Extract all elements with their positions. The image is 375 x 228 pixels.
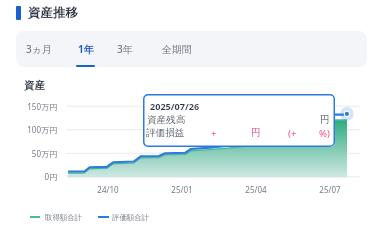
staticText: 25/04 [236,184,276,195]
button[interactable]: 3ヵ月 [18,31,59,67]
button[interactable]: 3年 [108,31,141,67]
staticText: (+ [288,127,297,140]
staticText: 資産 [24,79,45,92]
staticText: 150万円 [8,101,57,112]
button[interactable]: 1年 [69,31,102,67]
staticText: 2025/07/26 [150,100,200,112]
button[interactable]: 取得額合計 [28,206,86,224]
staticText: 資産推移 [28,5,78,21]
staticText: 取得額合計 [45,213,82,222]
staticText: 資産残高 [147,114,186,126]
staticText: %) [319,127,330,140]
staticText: 24/10 [88,184,128,195]
button[interactable]: 評価額合計 [95,206,153,224]
staticText: 円 [251,127,261,139]
staticText: 円 [320,114,330,126]
staticText: 評価額合計 [112,213,149,222]
staticText: 25/01 [162,184,202,195]
staticText: 100万円 [8,124,57,135]
staticText: 25/07 [310,184,350,195]
staticText: 3年 [117,42,133,56]
staticText: + [211,127,217,140]
staticText: 50万円 [8,148,57,159]
staticText: 全期間 [162,43,192,56]
staticText: 0円 [8,171,57,182]
button[interactable]: 全期間 [152,31,202,67]
staticText: 評価損益 [146,127,185,139]
button[interactable]: 資産推移 [16,5,78,21]
staticText: 1年 [78,42,94,56]
staticText: 3ヵ月 [26,42,52,56]
